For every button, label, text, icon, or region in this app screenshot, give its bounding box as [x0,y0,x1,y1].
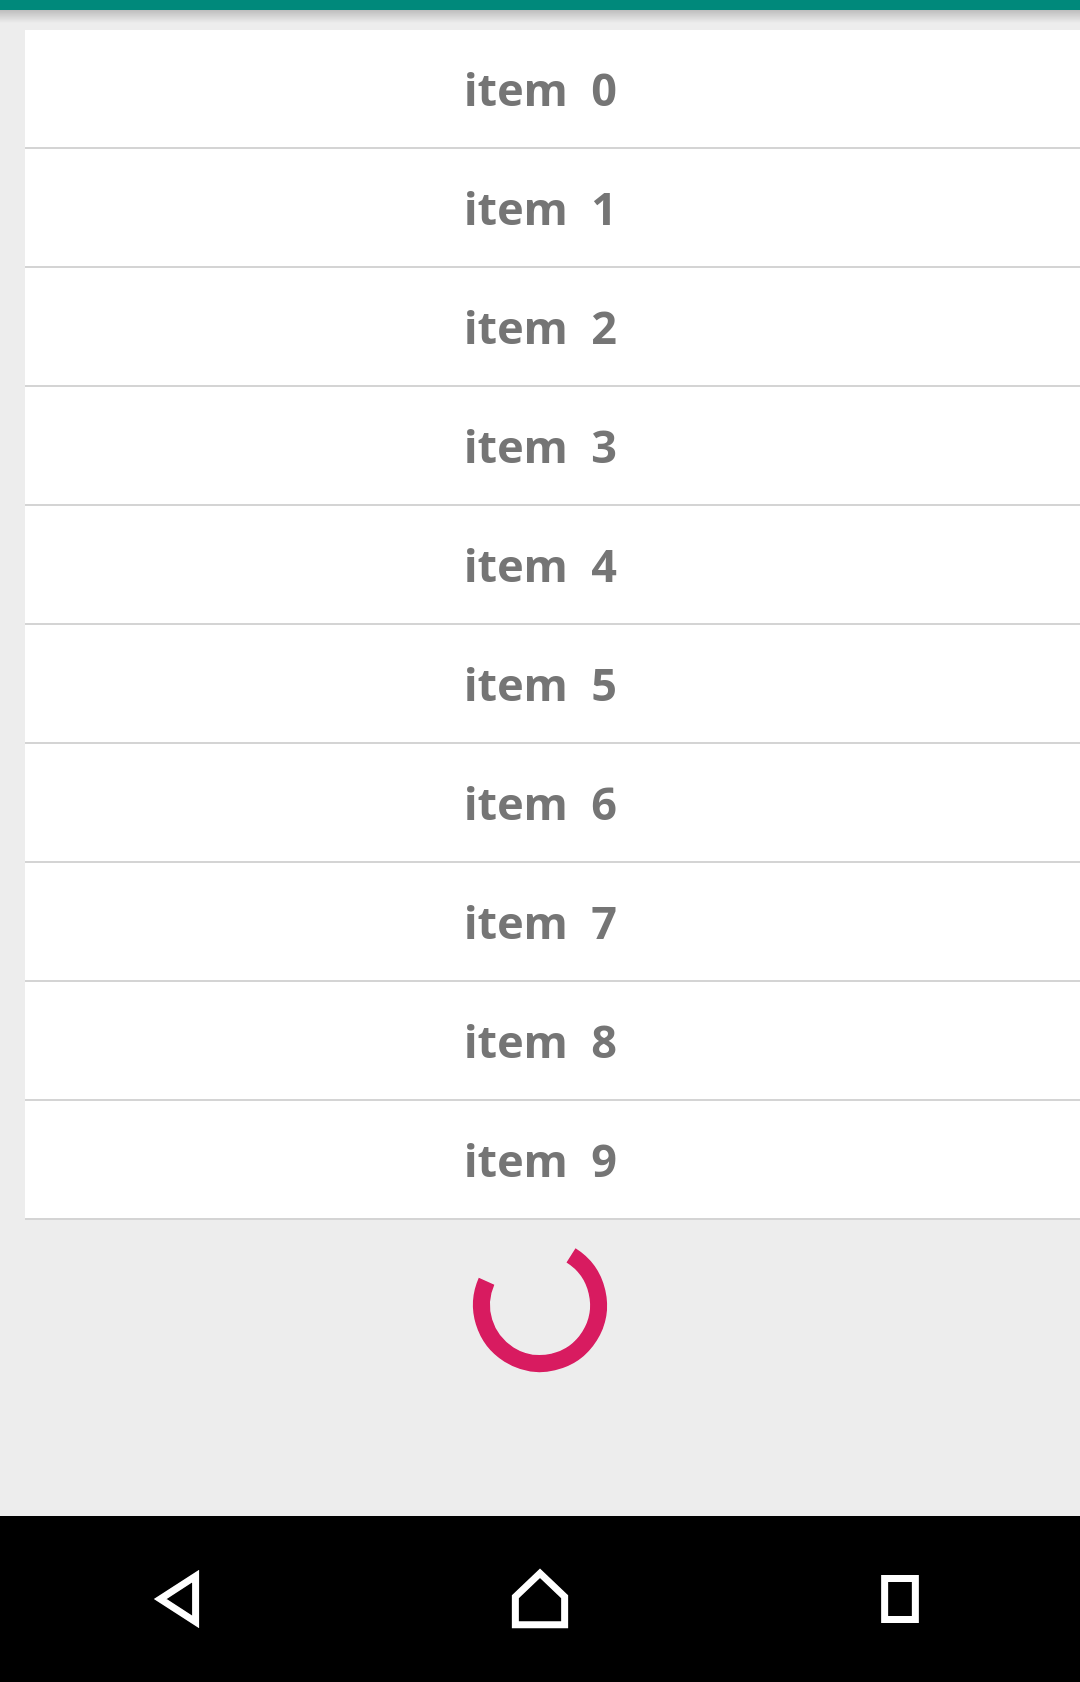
staticText: item 9 [464,1129,617,1190]
staticText: item 2 [464,296,617,357]
button[interactable]: Back [0,1516,360,1682]
button[interactable]: item 6 [25,744,1080,863]
button[interactable]: item 1 [25,149,1080,268]
button[interactable]: Recent apps [720,1516,1080,1682]
staticText: item 7 [464,891,617,952]
staticText: item 1 [464,177,617,238]
staticText: item 4 [464,534,617,595]
button[interactable]: item 7 [25,863,1080,982]
button[interactable]: item 3 [25,387,1080,506]
staticText: item 5 [464,653,617,714]
staticText: item 0 [464,58,617,119]
button[interactable]: item 4 [25,506,1080,625]
button[interactable]: Home [360,1516,720,1682]
button[interactable]: item 5 [25,625,1080,744]
other: Loading [473,1238,607,1372]
button[interactable]: item 8 [25,982,1080,1101]
button[interactable]: item 0 [25,30,1080,149]
staticText: item 3 [464,415,617,476]
button[interactable]: item 9 [25,1101,1080,1220]
button[interactable]: item 2 [25,268,1080,387]
staticText: item 6 [464,772,617,833]
staticText: item 8 [464,1010,617,1071]
